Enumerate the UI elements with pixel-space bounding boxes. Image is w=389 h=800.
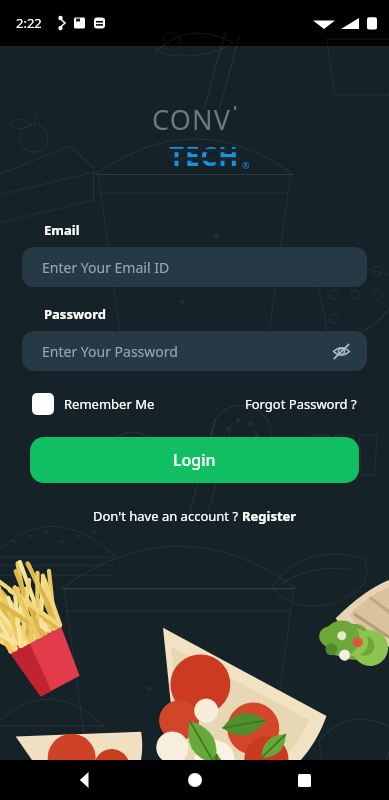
- staticText: Remember Me: [64, 395, 155, 413]
- staticText: Don't have an account ?: [93, 507, 242, 525]
- staticText: Password: [44, 305, 106, 323]
- staticText: Enter Your Password: [42, 342, 178, 361]
- staticText: Email: [44, 221, 80, 239]
- button[interactable]: Enter Your Email ID: [22, 247, 367, 287]
- button[interactable]: Remember Me: [32, 389, 155, 419]
- button[interactable]: Recent apps: [280, 760, 328, 800]
- staticText: ': [233, 101, 238, 123]
- staticText: ®: [242, 159, 250, 171]
- button[interactable]: Home: [171, 760, 219, 800]
- button[interactable]: Back: [61, 760, 109, 800]
- button[interactable]: Enter Your Password: [22, 331, 367, 371]
- staticText: 2:22: [16, 14, 42, 32]
- staticText: Enter Your Email ID: [42, 258, 170, 277]
- staticText: TECH: [169, 138, 240, 173]
- button[interactable]: Show password: [329, 339, 353, 363]
- button[interactable]: Forgot Password ?: [245, 391, 357, 417]
- staticText: Forgot Password ?: [245, 395, 357, 413]
- staticText: Register: [242, 507, 297, 525]
- staticText: CONV: [152, 101, 232, 138]
- button[interactable]: Login: [30, 437, 359, 483]
- button[interactable]: Don't have an account ?: [89, 503, 301, 529]
- staticText: Login: [173, 449, 216, 471]
